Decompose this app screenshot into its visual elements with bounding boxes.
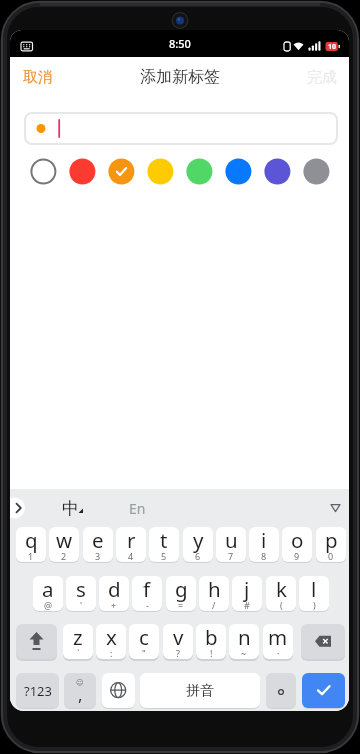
staticText: · (277, 647, 280, 659)
staticText: g (175, 575, 188, 603)
staticText: t (160, 526, 168, 554)
staticText: 添加新标签 (140, 67, 220, 87)
staticText: 5 (161, 550, 167, 562)
button[interactable]: x (96, 624, 126, 659)
staticText: ! (210, 647, 213, 659)
button[interactable] (102, 673, 135, 708)
staticText: v (173, 623, 184, 651)
staticText: z (73, 623, 83, 651)
button[interactable]: ☺ (64, 673, 96, 708)
staticText: ? (176, 647, 180, 659)
button[interactable]: r (116, 527, 146, 562)
button[interactable]: w (49, 527, 79, 562)
staticText: 6 (195, 550, 201, 562)
staticText: q (25, 526, 38, 554)
button[interactable]: m (263, 624, 293, 659)
staticText: ` (77, 647, 80, 659)
staticText: p (325, 526, 338, 554)
staticText: o (291, 526, 304, 554)
staticText: 取消 (23, 68, 53, 87)
button[interactable]: t (149, 527, 179, 562)
button[interactable]: j (232, 576, 262, 611)
button[interactable]: f (132, 576, 162, 611)
staticText: x (106, 623, 117, 651)
staticText: ( (280, 599, 283, 611)
button[interactable]: v (163, 624, 193, 659)
staticText: ' (80, 599, 83, 611)
button[interactable]: y (183, 527, 213, 562)
button[interactable]: h (199, 576, 229, 611)
staticText: @ (44, 599, 53, 611)
staticText: 2 (61, 550, 67, 562)
staticText: n (238, 623, 251, 651)
button[interactable]: u (216, 527, 246, 562)
button[interactable] (302, 673, 345, 708)
button[interactable]: i (249, 527, 279, 562)
staticText: 9 (294, 550, 300, 562)
button[interactable]: s (66, 576, 96, 611)
staticText: , (78, 683, 83, 706)
button[interactable]: l (299, 576, 329, 611)
staticText: ?123 (24, 682, 52, 700)
staticText: h (208, 575, 221, 603)
staticText: j (244, 575, 250, 603)
staticText: # (244, 599, 250, 611)
button[interactable]: e (83, 527, 113, 562)
button[interactable]: 取消 (13, 57, 63, 97)
button[interactable] (24, 158, 336, 185)
button[interactable]: 中 (50, 489, 90, 527)
staticText: a (42, 575, 54, 603)
staticText: 8:50 (169, 36, 191, 51)
staticText: c (139, 623, 149, 651)
staticText: 中 (62, 498, 79, 519)
staticText: " (142, 647, 146, 659)
staticText: s (76, 575, 86, 603)
button[interactable]: q (16, 527, 46, 562)
staticText: En (129, 499, 146, 518)
staticText: y (193, 526, 204, 554)
button[interactable]: k (266, 576, 296, 611)
staticText: 1 (28, 550, 34, 562)
staticText: 0 (328, 550, 334, 562)
button[interactable]: n (229, 624, 259, 659)
staticText: ~ (241, 647, 247, 659)
staticText: 4 (128, 550, 134, 562)
staticText: = (178, 599, 184, 611)
staticText: i (261, 526, 267, 554)
staticText: b (205, 623, 218, 651)
staticText: : (110, 647, 113, 659)
staticText: e (92, 526, 104, 554)
button[interactable]: d (99, 576, 129, 611)
staticText: 7 (228, 550, 234, 562)
staticText: m (268, 623, 288, 651)
button[interactable]: g (166, 576, 196, 611)
staticText: ) (313, 599, 316, 611)
staticText: d (108, 575, 121, 603)
button[interactable]: 拼音 (140, 673, 260, 708)
staticText: / (212, 599, 216, 611)
staticText: k (276, 575, 287, 603)
button[interactable]: p (316, 527, 346, 562)
button[interactable]: b (196, 624, 226, 659)
button[interactable]: ?123 (16, 673, 59, 708)
staticText: + (111, 599, 117, 611)
staticText: 8 (261, 550, 267, 562)
staticText: f (143, 575, 151, 603)
staticText: 完成 (307, 68, 337, 87)
button[interactable]: a (33, 576, 63, 611)
button[interactable]: 完成 (295, 57, 349, 97)
staticText: u (225, 526, 238, 554)
button[interactable] (16, 624, 57, 659)
button[interactable]: En (117, 489, 157, 527)
staticText: l (311, 575, 317, 603)
button[interactable]: z (63, 624, 93, 659)
button[interactable] (266, 673, 296, 708)
staticText: w (56, 526, 73, 554)
button[interactable]: c (129, 624, 159, 659)
staticText: r (127, 526, 136, 554)
staticText: 拼音 (186, 682, 214, 700)
staticText: 3 (95, 550, 101, 562)
button[interactable]: o (282, 527, 312, 562)
staticText: 10 (328, 42, 337, 51)
button[interactable] (301, 624, 345, 659)
